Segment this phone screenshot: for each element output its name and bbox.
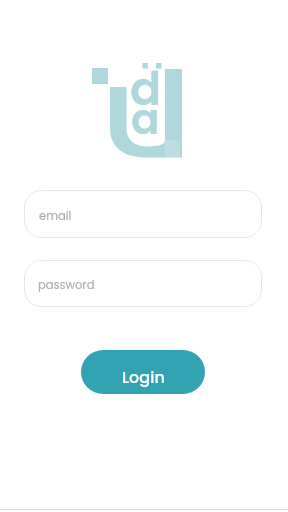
staticText: a: [131, 90, 160, 149]
staticText: password: [38, 277, 95, 293]
button[interactable]: Login: [81, 350, 205, 394]
button[interactable]: email: [24, 190, 262, 238]
staticText: email: [39, 208, 72, 224]
staticText: d: [130, 57, 162, 121]
button[interactable]: password: [24, 260, 262, 307]
staticText: Login: [122, 366, 165, 388]
